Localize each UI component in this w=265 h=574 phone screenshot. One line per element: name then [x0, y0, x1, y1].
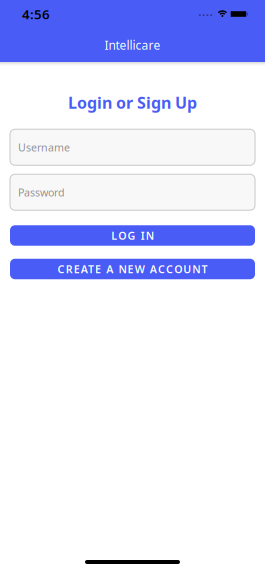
button[interactable]: LOG IN — [10, 225, 255, 246]
staticText: CREATE A NEW ACCOUNT — [58, 262, 207, 276]
staticText: Intellicare — [104, 37, 160, 53]
button[interactable]: Password — [10, 174, 255, 210]
button[interactable]: Username — [10, 129, 255, 165]
staticText: LOG IN — [111, 228, 154, 243]
button[interactable]: CREATE A NEW ACCOUNT — [10, 259, 255, 279]
staticText: Login or Sign Up — [68, 92, 197, 113]
staticText: 4:56 — [22, 5, 50, 23]
staticText: Password — [18, 185, 65, 199]
staticText: Username — [18, 140, 70, 154]
